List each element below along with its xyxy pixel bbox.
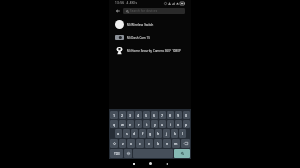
button[interactable]: 3 — [127, 111, 134, 119]
staticText: 5 — [145, 113, 148, 118]
staticText: Search for devices — [130, 9, 158, 13]
staticText: r — [138, 122, 140, 127]
button[interactable]: Shift — [110, 139, 118, 148]
staticText: Mi Wireless Switch — [127, 23, 154, 27]
button[interactable]: Search for devices — [123, 8, 185, 14]
button[interactable]: d — [131, 129, 138, 138]
staticText: 1 — [113, 113, 116, 118]
button[interactable]: b — [154, 139, 162, 148]
button[interactable]: p — [183, 120, 190, 128]
button[interactable]: 9 — [175, 111, 182, 119]
staticText: o — [177, 122, 180, 127]
button[interactable]: Mi Home Security Camera 360° 1080P — [109, 44, 191, 57]
button[interactable]: t — [143, 120, 150, 128]
staticText: i — [170, 122, 171, 127]
button[interactable]: h — [155, 129, 162, 138]
button[interactable]: z — [119, 139, 126, 148]
button[interactable]: l — [179, 129, 186, 138]
staticText: a — [117, 131, 120, 136]
staticText: l — [182, 131, 183, 136]
staticText: 3 — [129, 113, 132, 118]
button[interactable]: a — [115, 129, 122, 138]
button[interactable]: 8 — [167, 111, 174, 119]
button[interactable]: v — [145, 139, 153, 148]
staticText: h — [157, 131, 160, 136]
staticText: u — [161, 122, 164, 127]
button[interactable]: e — [127, 120, 134, 128]
button[interactable]: 5 — [143, 111, 150, 119]
button[interactable]: f — [139, 129, 146, 138]
button[interactable]: 6 — [151, 111, 158, 119]
staticText: k — [174, 131, 176, 136]
button[interactable]: k — [171, 129, 178, 138]
button[interactable]: c — [136, 139, 144, 148]
button[interactable]: n — [163, 139, 171, 148]
button[interactable]: 2 — [119, 111, 126, 119]
button[interactable]: Recents — [130, 160, 137, 167]
button[interactable]: Mi Dash Cam 1S — [109, 31, 191, 44]
button[interactable]: y — [151, 120, 158, 128]
staticText: q — [113, 122, 116, 127]
button[interactable]: o — [175, 120, 182, 128]
button[interactable]: j — [163, 129, 170, 138]
staticText: b — [157, 141, 160, 146]
button[interactable]: ?123 — [110, 149, 123, 158]
staticText: 4 — [137, 113, 140, 118]
button[interactable]: Emoji — [124, 149, 132, 158]
button[interactable]: Mi Wireless Switch — [109, 18, 191, 31]
button[interactable]: 1 — [110, 111, 118, 119]
button[interactable]: Back — [113, 6, 123, 16]
staticText: ?123 — [114, 152, 120, 156]
staticText: m — [174, 141, 178, 146]
button[interactable]: i — [167, 120, 174, 128]
staticText: g — [149, 131, 152, 136]
button[interactable]: m — [172, 139, 180, 148]
button[interactable]: g — [147, 129, 154, 138]
staticText: f — [142, 131, 144, 136]
button[interactable]: x — [127, 139, 135, 148]
staticText: Mi Home Security Camera 360° 1080P — [127, 49, 181, 53]
staticText: Mi Dash Cam 1S — [127, 36, 150, 40]
button[interactable]: 4 — [135, 111, 142, 119]
staticText: e — [129, 122, 132, 127]
staticText: 0 — [185, 113, 188, 118]
staticText: n — [166, 141, 169, 146]
button[interactable]: Home — [147, 160, 154, 167]
button[interactable]: w — [119, 120, 126, 128]
staticText: 8 — [169, 113, 172, 118]
staticText: p — [185, 122, 188, 127]
staticText: s — [126, 131, 128, 136]
staticText: x — [130, 141, 132, 146]
staticText: v — [148, 141, 150, 146]
button[interactable]: Search — [174, 149, 190, 158]
staticText: 9 — [177, 113, 180, 118]
button[interactable]: Backspace — [181, 139, 190, 148]
staticText: c — [139, 141, 141, 146]
button[interactable]: 0 — [183, 111, 190, 119]
button[interactable]: r — [135, 120, 142, 128]
button[interactable]: s — [123, 129, 130, 138]
button[interactable]: q — [110, 120, 118, 128]
staticText: z — [122, 141, 124, 146]
staticText: 6 — [153, 113, 156, 118]
button[interactable]: 7 — [159, 111, 166, 119]
button[interactable]: Back — [163, 160, 170, 167]
staticText: y — [154, 122, 156, 127]
staticText: t — [146, 122, 148, 127]
staticText: d — [133, 131, 136, 136]
button[interactable]: u — [159, 120, 166, 128]
staticText: 13:56 4.8K/s — [115, 1, 138, 5]
staticText: 2 — [121, 113, 124, 118]
staticText: 7 — [161, 113, 164, 118]
staticText: j — [166, 131, 167, 136]
staticText: w — [121, 122, 124, 127]
